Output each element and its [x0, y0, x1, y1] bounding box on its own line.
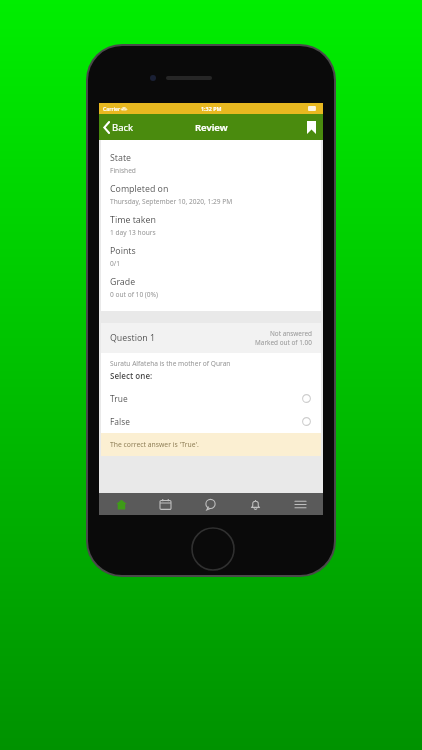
- staticText: Time taken: [110, 214, 156, 226]
- button[interactable]: Points: [110, 241, 321, 272]
- button[interactable]: Calendar: [143, 493, 188, 515]
- staticText: 1:32 PM: [201, 105, 222, 112]
- button[interactable]: Grade: [110, 272, 321, 303]
- staticText: Suratu Alfateha is the mother of Quran: [110, 359, 231, 368]
- button[interactable]: False: [101, 410, 321, 433]
- button[interactable]: True: [101, 387, 321, 410]
- staticText: False: [110, 416, 302, 427]
- staticText: Grade: [110, 276, 136, 288]
- staticText: True: [110, 393, 302, 404]
- staticText: Points: [110, 245, 136, 257]
- button[interactable]: Time taken: [110, 210, 321, 241]
- button[interactable]: Home: [99, 493, 143, 515]
- staticText: Thursday, September 10, 2020, 1:29 PM: [110, 197, 233, 206]
- staticText: Back: [112, 121, 134, 134]
- button[interactable]: Menu: [278, 493, 323, 515]
- staticText: Select one:: [110, 370, 153, 381]
- staticText: The correct answer is 'True'.: [110, 440, 199, 449]
- staticText: Review: [195, 121, 228, 134]
- staticText: 1 day 13 hours: [110, 228, 156, 237]
- staticText: State: [110, 152, 132, 164]
- staticText: Not answered: [270, 329, 312, 338]
- button[interactable]: Completed on: [110, 179, 321, 210]
- button[interactable]: Notifications: [233, 493, 278, 515]
- staticText: Completed on: [110, 183, 169, 195]
- button[interactable]: Messages: [188, 493, 233, 515]
- staticText: Finished: [110, 166, 136, 175]
- staticText: Question 1: [110, 332, 255, 344]
- staticText: Marked out of 1.00: [255, 338, 312, 347]
- button[interactable]: Back: [99, 117, 139, 138]
- button[interactable]: State: [110, 148, 321, 179]
- button[interactable]: Bookmark: [300, 117, 323, 138]
- staticText: Carrier: [103, 105, 121, 112]
- staticText: 0 out of 10 (0%): [110, 290, 159, 299]
- staticText: 0/1: [110, 259, 120, 268]
